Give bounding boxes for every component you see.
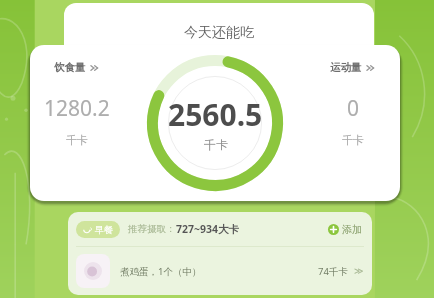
staticText: 煮鸡蛋，1个（中） — [120, 265, 202, 278]
staticText: 0 — [347, 94, 360, 123]
staticText: 74千卡 — [318, 265, 348, 278]
staticText: 今天还能吃 — [184, 24, 254, 42]
other: More — [365, 64, 376, 72]
button[interactable]: 运动量 — [314, 61, 392, 147]
staticText: 推荐摄取： — [128, 223, 176, 235]
staticText: 运动量 — [330, 61, 362, 74]
staticText: 千卡 — [66, 133, 88, 147]
button[interactable]: 早餐 — [76, 221, 120, 238]
staticText: ≫ — [354, 266, 364, 276]
staticText: 千卡 — [204, 137, 228, 152]
staticText: 饮食量 — [54, 61, 86, 74]
staticText: 添加 — [342, 223, 362, 236]
staticText: 727~934大卡 — [176, 222, 240, 236]
other: More — [89, 64, 100, 72]
staticText: 2560.5 — [168, 94, 263, 135]
staticText: 1280.2 — [44, 94, 110, 123]
staticText: 早餐 — [95, 224, 113, 235]
staticText: 千卡 — [342, 133, 364, 147]
button[interactable]: 饮食量 — [38, 61, 116, 147]
button[interactable]: 煮鸡蛋，1个（中） — [68, 247, 372, 295]
button[interactable]: 添加 — [326, 223, 364, 236]
